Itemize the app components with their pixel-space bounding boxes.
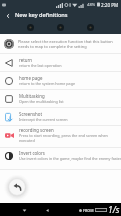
staticText: recording screen — [19, 127, 54, 133]
button[interactable]: Screenshot — [0, 108, 121, 125]
button[interactable]: Shortcut 1 — [57, 24, 64, 31]
staticText: Please select the execution function tha… — [18, 39, 113, 49]
staticText: return — [19, 57, 33, 63]
staticText: Press to start recording, press the end … — [19, 133, 108, 143]
button[interactable]: home page — [0, 72, 121, 89]
button[interactable]: Invert colors — [0, 148, 121, 169]
staticText: home page — [19, 75, 43, 81]
staticText: 2:20 PM — [101, 2, 119, 8]
button[interactable]: Shortcut 2 — [87, 24, 94, 31]
staticText: Intercept the current screen — [19, 117, 68, 122]
staticText: return the last operation — [19, 63, 62, 68]
button[interactable]: Multitasking — [0, 90, 121, 107]
staticText: Open the multitasking list — [19, 99, 64, 104]
staticText: FROM — [83, 208, 94, 213]
button[interactable]: Back — [3, 11, 12, 20]
staticText: return to the system home page — [19, 81, 75, 86]
button[interactable]: return — [0, 54, 121, 71]
button[interactable]: recording screen — [0, 126, 121, 147]
staticText: Multitasking — [19, 93, 45, 99]
staticText: 1/s — [108, 204, 120, 216]
staticText: Screenshot — [19, 111, 42, 117]
button[interactable]: Hide keyboard — [19, 205, 29, 215]
staticText: 48% — [87, 2, 96, 8]
button[interactable]: Back — [42, 205, 52, 215]
staticText: New key definitions — [15, 11, 68, 19]
button[interactable]: Undo — [6, 176, 28, 198]
staticText: Use invert colors in the game, maybe fin… — [19, 156, 121, 161]
button[interactable]: Shortcut 0 — [27, 24, 34, 31]
staticText: Invert colors — [19, 150, 45, 156]
